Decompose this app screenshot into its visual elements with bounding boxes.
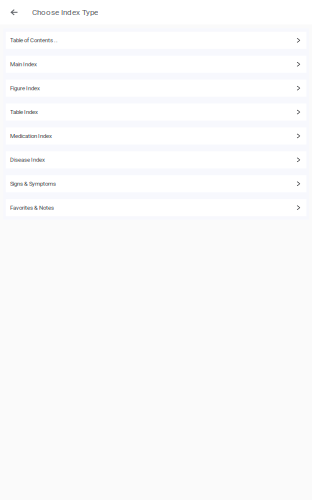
- button[interactable]: Disease Index: [6, 151, 306, 168]
- button[interactable]: Favorites & Notes: [6, 199, 306, 216]
- button[interactable]: Back: [0, 0, 32, 25]
- staticText: Favorites & Notes: [10, 204, 54, 211]
- button[interactable]: Table Index: [6, 103, 306, 121]
- staticText: Medication Index: [10, 132, 52, 139]
- button[interactable]: Table of Contents ..: [6, 32, 306, 49]
- staticText: Disease Index: [10, 156, 45, 163]
- staticText: Figure Index: [10, 85, 40, 92]
- staticText: Main Index: [10, 61, 37, 68]
- button[interactable]: Medication Index: [6, 127, 306, 144]
- button[interactable]: Figure Index: [6, 80, 306, 97]
- staticText: Table Index: [10, 109, 38, 115]
- staticText: Signs & Symptoms: [10, 180, 56, 187]
- button[interactable]: Signs & Symptoms: [6, 175, 306, 192]
- staticText: Choose Index Type: [32, 8, 98, 17]
- button[interactable]: Main Index: [6, 56, 306, 73]
- staticText: Table of Contents ..: [10, 37, 58, 44]
